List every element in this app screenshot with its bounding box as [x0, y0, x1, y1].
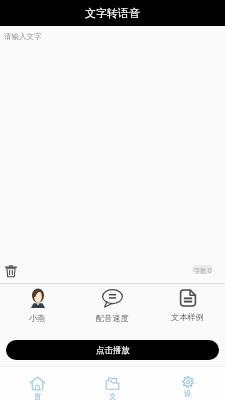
button[interactable]: 设 — [150, 367, 225, 400]
button[interactable]: 小燕 — [0, 284, 75, 340]
staticText: 设 — [184, 389, 192, 398]
staticText: 首 — [34, 392, 42, 400]
staticText: 小燕 — [29, 313, 46, 323]
staticText: 文字转语音 — [85, 6, 140, 20]
button[interactable]: Clear text — [1, 261, 21, 281]
button[interactable]: 配音速度 — [75, 284, 150, 340]
staticText: 配音速度 — [96, 313, 129, 323]
button[interactable]: 首 — [0, 367, 75, 400]
button[interactable]: 点击播放 — [6, 340, 219, 360]
staticText: 请输入文字 — [4, 32, 42, 41]
button[interactable]: 文 — [75, 367, 150, 400]
button[interactable]: 文本样例 — [150, 284, 225, 340]
staticText: 文本样例 — [171, 312, 204, 322]
staticText: 字数 0 — [194, 266, 212, 274]
staticText: 文 — [109, 392, 117, 400]
staticText: 点击播放 — [96, 345, 130, 356]
